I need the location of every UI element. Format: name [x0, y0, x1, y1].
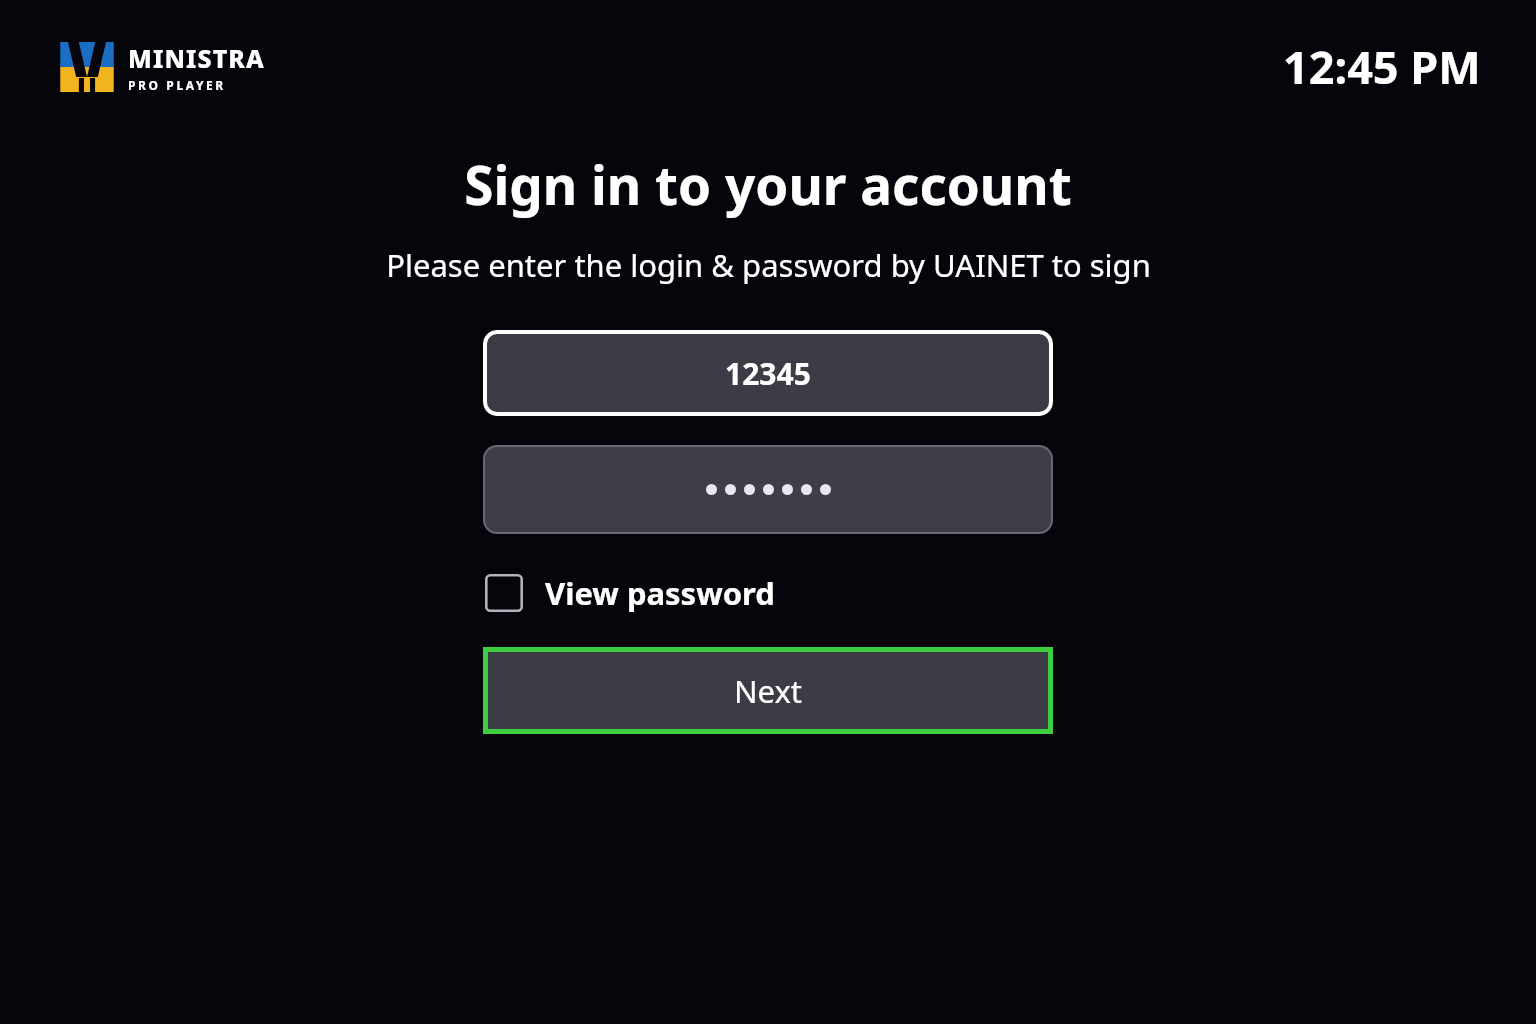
button[interactable]: Next: [483, 647, 1053, 734]
staticText: Sign in to your account: [464, 148, 1072, 220]
staticText: MINISTRA: [128, 41, 265, 75]
staticText: 12345: [725, 353, 811, 394]
button[interactable]: Password: [483, 445, 1053, 534]
staticText: Next: [734, 670, 803, 712]
staticText: View password: [545, 572, 775, 614]
staticText: 12:45 PM: [1283, 36, 1481, 97]
button[interactable]: 12345: [483, 330, 1053, 416]
staticText: Please enter the login & password by UAI…: [386, 244, 1151, 286]
staticText: PRO PLAYER: [128, 77, 226, 93]
other: Ministra Pro Player logo: [57, 42, 117, 92]
button[interactable]: View password: [485, 572, 775, 614]
